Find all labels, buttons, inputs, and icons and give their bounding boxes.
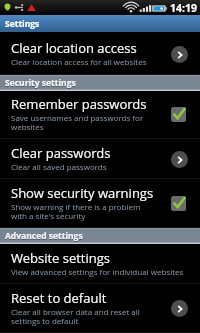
staticText: Clear all saved passwords — [11, 161, 153, 172]
staticText: Clear all browser data and reset all set… — [11, 306, 153, 327]
button[interactable]: Remember passwords — [0, 90, 200, 139]
button[interactable]: Open — [171, 151, 188, 168]
staticText: Security settings — [5, 77, 76, 89]
button[interactable]: Toggle — [171, 107, 186, 122]
staticText: Show warning if there is a problem with … — [11, 201, 153, 222]
staticText: Clear location access for all websites — [11, 56, 153, 67]
staticText: Clear passwords — [11, 144, 111, 162]
button[interactable]: Website settings — [0, 244, 200, 284]
button[interactable]: Open — [171, 300, 188, 317]
staticText: Settings — [5, 18, 40, 30]
staticText: Website settings — [11, 249, 111, 267]
staticText: Show security warnings — [11, 184, 154, 202]
staticText: Save usernames and passwords for website… — [11, 112, 153, 133]
button[interactable]: Clear location access — [0, 34, 200, 75]
staticText: Security settings — [5, 78, 76, 90]
staticText: Advanced settings — [5, 231, 83, 243]
button[interactable]: Open — [171, 46, 188, 63]
button[interactable]: Clear passwords — [0, 139, 200, 179]
staticText: Advanced settings — [5, 230, 83, 242]
button[interactable]: Show security warnings — [0, 179, 200, 228]
staticText: Reset to default — [11, 289, 107, 307]
staticText: Remember passwords — [11, 95, 147, 113]
staticText: 14:19 — [170, 1, 197, 15]
button[interactable]: Toggle — [171, 196, 186, 211]
staticText: Clear location access — [11, 39, 137, 57]
staticText: View advanced settings for individual we… — [11, 266, 191, 277]
button[interactable]: Reset to default — [0, 284, 200, 333]
